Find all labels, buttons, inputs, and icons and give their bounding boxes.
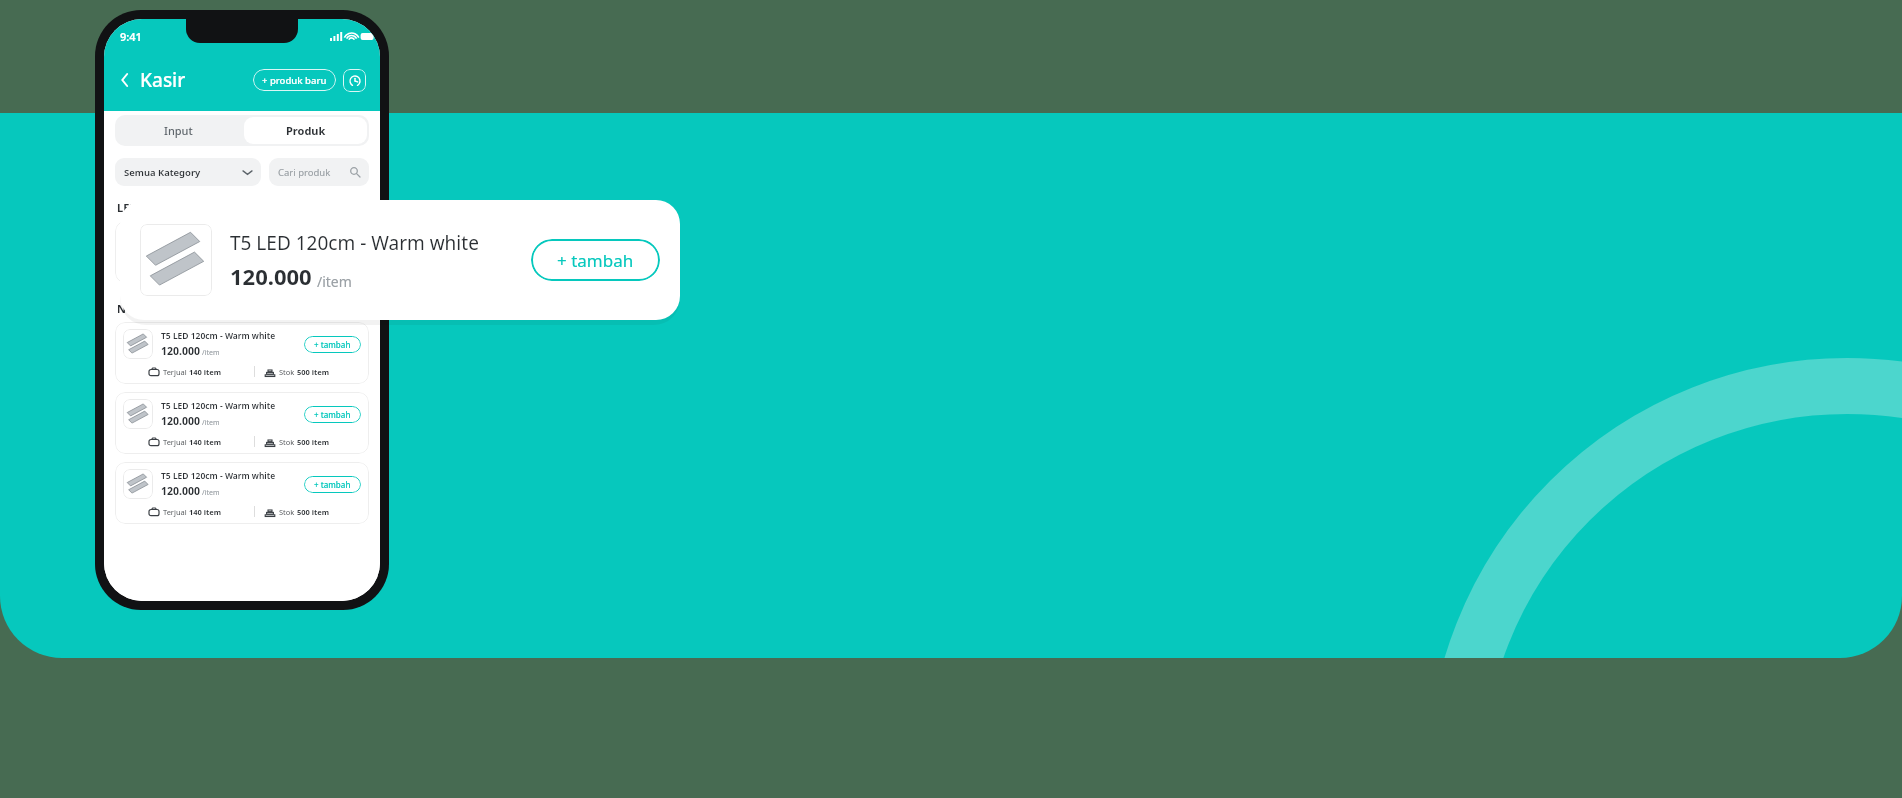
staticText: Kasir xyxy=(140,67,186,93)
staticText: T5 LED 120cm - Warm white xyxy=(161,470,276,482)
staticText: + tambah xyxy=(557,249,634,272)
staticText: 120.000 xyxy=(161,414,200,428)
staticText: 500 item xyxy=(297,367,330,377)
staticText: /item xyxy=(317,272,352,291)
button[interactable]: T5 LED 120cm - Warm white xyxy=(115,221,369,283)
staticText: 120.000 xyxy=(161,484,200,498)
button[interactable]: T5 LED 120cm - Warm white xyxy=(115,322,369,384)
button[interactable]: + tambah xyxy=(304,336,361,353)
staticText: Terjual xyxy=(163,266,189,276)
button[interactable]: + produk baru xyxy=(253,69,336,91)
staticText: 500 item xyxy=(297,266,330,276)
staticText: + tambah xyxy=(314,409,351,420)
staticText: T5 LED 120cm - Warm white xyxy=(161,400,276,412)
staticText: Terjual xyxy=(163,367,189,377)
button[interactable]: T5 LED 120cm - Warm white xyxy=(115,462,369,524)
button[interactable]: + tambah xyxy=(304,235,361,252)
staticText: Stok xyxy=(279,437,297,447)
button[interactable]: + tambah xyxy=(304,406,361,423)
button[interactable]: History xyxy=(343,69,366,92)
staticText: + tambah xyxy=(314,479,351,490)
staticText: T5 LED 120cm - Warm white xyxy=(230,230,479,256)
staticText: /item xyxy=(202,488,220,498)
staticText: Stok xyxy=(279,266,297,276)
button[interactable]: Input xyxy=(115,115,242,146)
button[interactable]: + tambah xyxy=(531,239,660,281)
staticText: LED xyxy=(117,200,138,215)
staticText: Produk xyxy=(286,123,326,138)
staticText: Stok xyxy=(279,367,297,377)
button[interactable]: T5 LED 120cm - Warm white xyxy=(115,392,369,454)
staticText: Input xyxy=(164,123,193,138)
staticText: 120.000 xyxy=(161,344,200,358)
staticText: Semua Kategory xyxy=(124,166,201,179)
staticText: + produk baru xyxy=(262,74,327,87)
button[interactable]: Semua Kategory xyxy=(115,158,261,186)
staticText: Stok xyxy=(279,507,297,517)
button[interactable]: Back xyxy=(114,69,136,91)
staticText: 140 item xyxy=(189,367,222,377)
staticText: T5 LED 120cm - Warm white xyxy=(161,229,276,241)
staticText: 140 item xyxy=(189,437,222,447)
staticText: /item xyxy=(202,247,220,257)
button[interactable]: T5 LED 120cm - Warm white xyxy=(120,200,680,320)
button[interactable]: Produk xyxy=(244,117,367,144)
staticText: Neon xyxy=(117,301,147,316)
staticText: 500 item xyxy=(297,437,330,447)
staticText: 140 item xyxy=(189,507,222,517)
staticText: Terjual xyxy=(163,507,189,517)
staticText: + tambah xyxy=(314,339,351,350)
staticText: 120.000 xyxy=(161,243,200,257)
staticText: 9:41 xyxy=(120,29,142,44)
staticText: 500 item xyxy=(297,507,330,517)
staticText: 120.000 xyxy=(230,261,312,291)
button[interactable]: + tambah xyxy=(304,476,361,493)
staticText: Terjual xyxy=(163,437,189,447)
staticText: Cari produk xyxy=(278,166,331,179)
staticText: + tambah xyxy=(314,238,351,249)
staticText: /item xyxy=(202,348,220,358)
staticText: 140 item xyxy=(189,266,222,276)
button[interactable]: Cari produk xyxy=(269,158,369,186)
staticText: /item xyxy=(202,418,220,428)
staticText: T5 LED 120cm - Warm white xyxy=(161,330,276,342)
